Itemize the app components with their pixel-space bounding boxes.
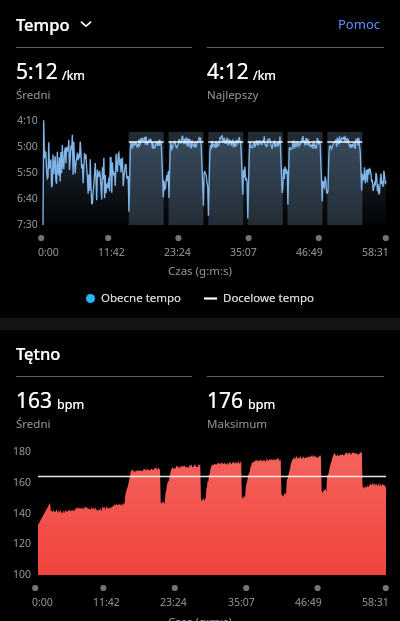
staticText: 160 (13, 475, 32, 489)
staticText: /km (253, 67, 277, 84)
button[interactable]: Pomoc (334, 11, 384, 37)
staticText: 5:00 (17, 139, 38, 153)
staticText: 6:40 (17, 191, 38, 205)
staticText: Średni (16, 416, 51, 432)
staticText: Czas (g:m:s) (168, 614, 233, 621)
staticText: Docelowe tempo (223, 290, 314, 306)
other: Change metric (79, 17, 93, 31)
staticText: 180 (13, 444, 32, 458)
staticText: bpm (248, 396, 276, 413)
staticText: 176 (207, 386, 244, 415)
staticText: 58:31 (362, 245, 389, 259)
staticText: 0:00 (38, 245, 59, 259)
staticText: 35:07 (228, 595, 255, 609)
staticText: 140 (13, 506, 32, 520)
staticText: 100 (13, 567, 32, 581)
staticText: Tętno (16, 342, 61, 364)
staticText: Tempo (16, 13, 70, 35)
staticText: 46:49 (296, 245, 323, 259)
staticText: Obecne tempo (101, 290, 182, 306)
staticText: 5:50 (17, 165, 38, 179)
staticText: 11:42 (98, 245, 125, 259)
staticText: Czas (g:m:s) (168, 263, 233, 279)
staticText: Maksimum (207, 416, 268, 432)
staticText: 163 (16, 386, 53, 415)
staticText: 4:10 (17, 113, 38, 127)
staticText: 23:24 (164, 245, 191, 259)
staticText: bpm (57, 396, 85, 413)
staticText: /km (62, 67, 86, 84)
staticText: Pomoc (338, 15, 380, 33)
staticText: 11:42 (93, 595, 120, 609)
staticText: 35:07 (230, 245, 257, 259)
button[interactable]: Tempo (16, 11, 99, 37)
staticText: 4:12 (207, 57, 249, 86)
staticText: 58:31 (362, 595, 389, 609)
staticText: Średni (16, 87, 51, 103)
staticText: 23:24 (160, 595, 187, 609)
staticText: 46:49 (295, 595, 322, 609)
staticText: 7:30 (17, 217, 38, 231)
staticText: 120 (13, 536, 32, 550)
staticText: 0:00 (32, 595, 53, 609)
staticText: Najlepszy (207, 87, 259, 103)
staticText: 5:12 (16, 57, 58, 86)
